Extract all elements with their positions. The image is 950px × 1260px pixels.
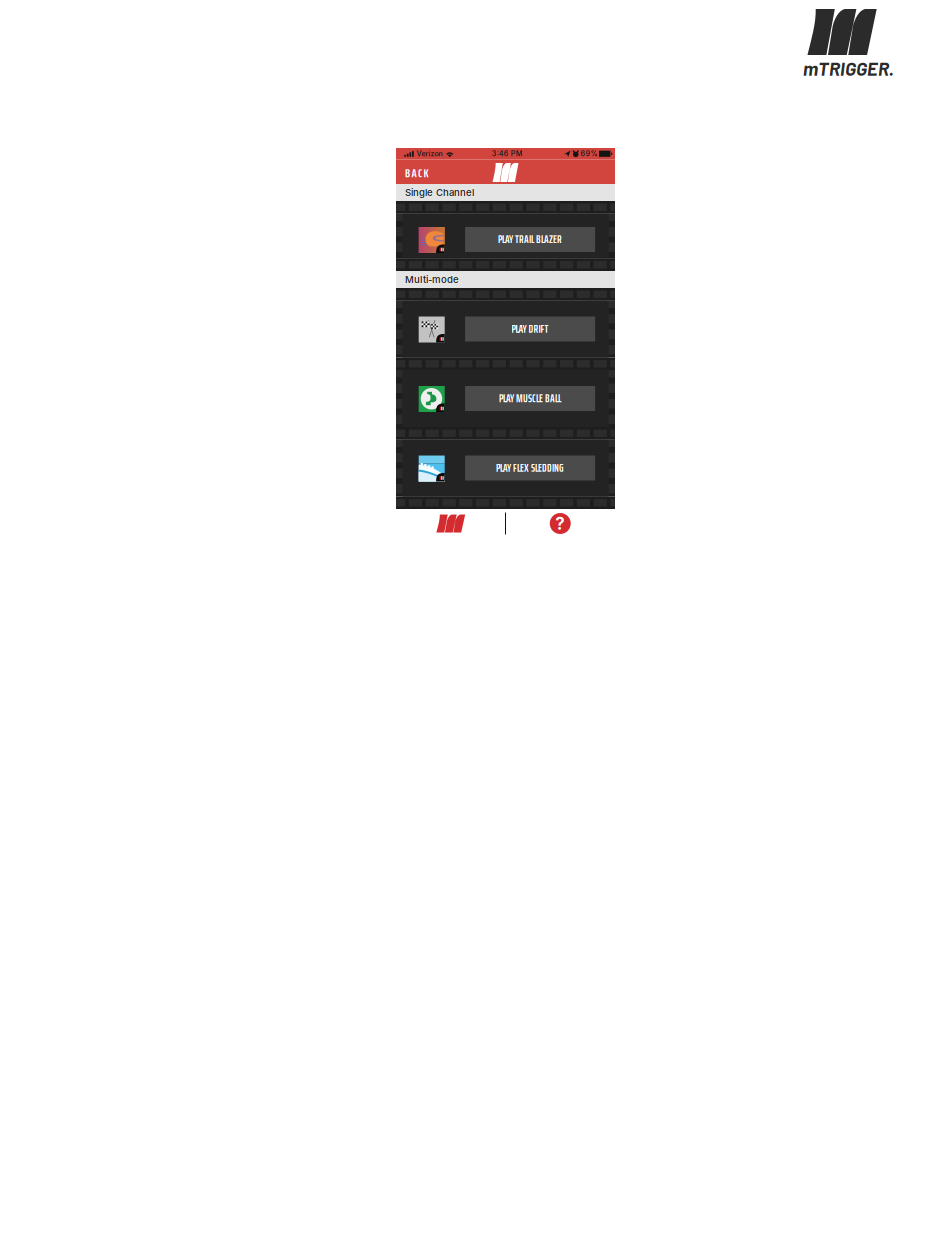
button[interactable]: Help [505, 509, 615, 538]
staticText: Single Channel [405, 187, 474, 198]
staticText: ? [555, 513, 565, 534]
staticText: PLAY FLEX SLEDDING [496, 459, 564, 477]
staticText: Verizon [416, 149, 442, 158]
button[interactable]: mTRIGGER home [396, 509, 505, 538]
button[interactable]: PLAY FLEX SLEDDING [465, 455, 595, 480]
staticText: PLAY DRIFT [512, 320, 549, 338]
button[interactable]: BACK [405, 165, 439, 181]
button[interactable]: PLAY DRIFT [465, 316, 595, 341]
button[interactable]: PLAY MUSCLE BALL [465, 386, 595, 411]
button[interactable]: PLAY TRAIL BLAZER [465, 227, 595, 252]
staticText: PLAY MUSCLE BALL [499, 390, 561, 407]
staticText: PLAY TRAIL BLAZER [498, 231, 562, 248]
staticText: 3:46 PM [492, 149, 523, 158]
staticText: mTRIGGER. [803, 57, 894, 79]
staticText: 69% [580, 149, 597, 158]
staticText: Multi-mode [405, 274, 459, 285]
staticText: BACK [405, 163, 428, 183]
